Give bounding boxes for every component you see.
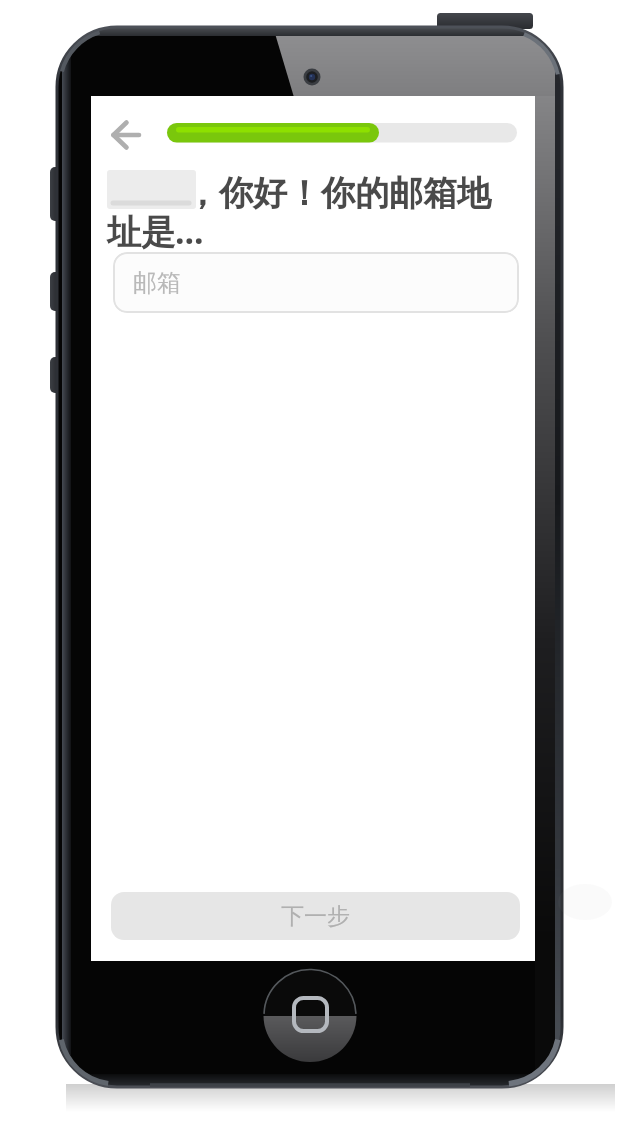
staticText: 下一步 (281, 902, 350, 931)
staticText: 址是... (107, 208, 204, 254)
button[interactable] (105, 117, 145, 153)
button[interactable]: 下一步 (111, 892, 520, 940)
button[interactable]: 邮箱 (113, 252, 519, 313)
staticText: 邮箱 (133, 268, 181, 298)
staticText: ，你好！你的邮箱地 (185, 172, 491, 215)
